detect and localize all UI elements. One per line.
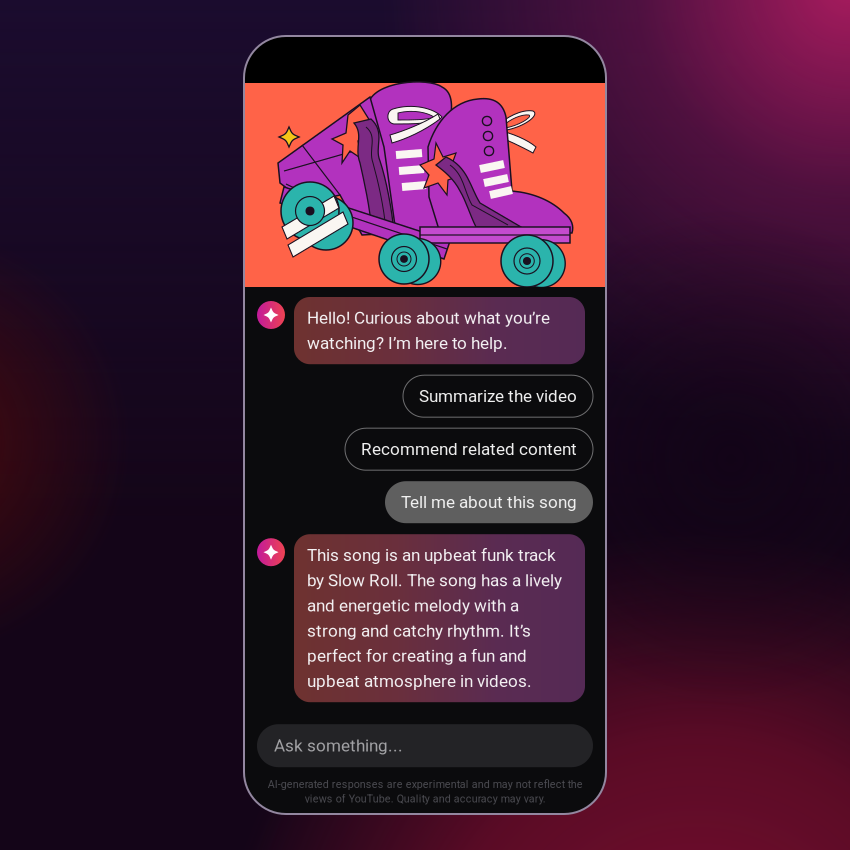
button[interactable]: Tell me about this song	[385, 481, 593, 523]
staticText: Ask something...	[274, 736, 403, 756]
staticText: Summarize the video	[419, 386, 577, 406]
button[interactable]: Ask something...	[257, 724, 593, 767]
button[interactable]: Recommend related content	[345, 428, 593, 470]
staticText: AI-generated responses are experimental …	[267, 778, 582, 805]
staticText: Recommend related content	[361, 439, 577, 459]
staticText: Hello! Curious about what you’re watchin…	[307, 308, 550, 353]
staticText: This song is an upbeat funk track by Slo…	[307, 545, 562, 691]
button[interactable]: Summarize the video	[403, 375, 593, 417]
staticText: Tell me about this song	[401, 492, 577, 512]
